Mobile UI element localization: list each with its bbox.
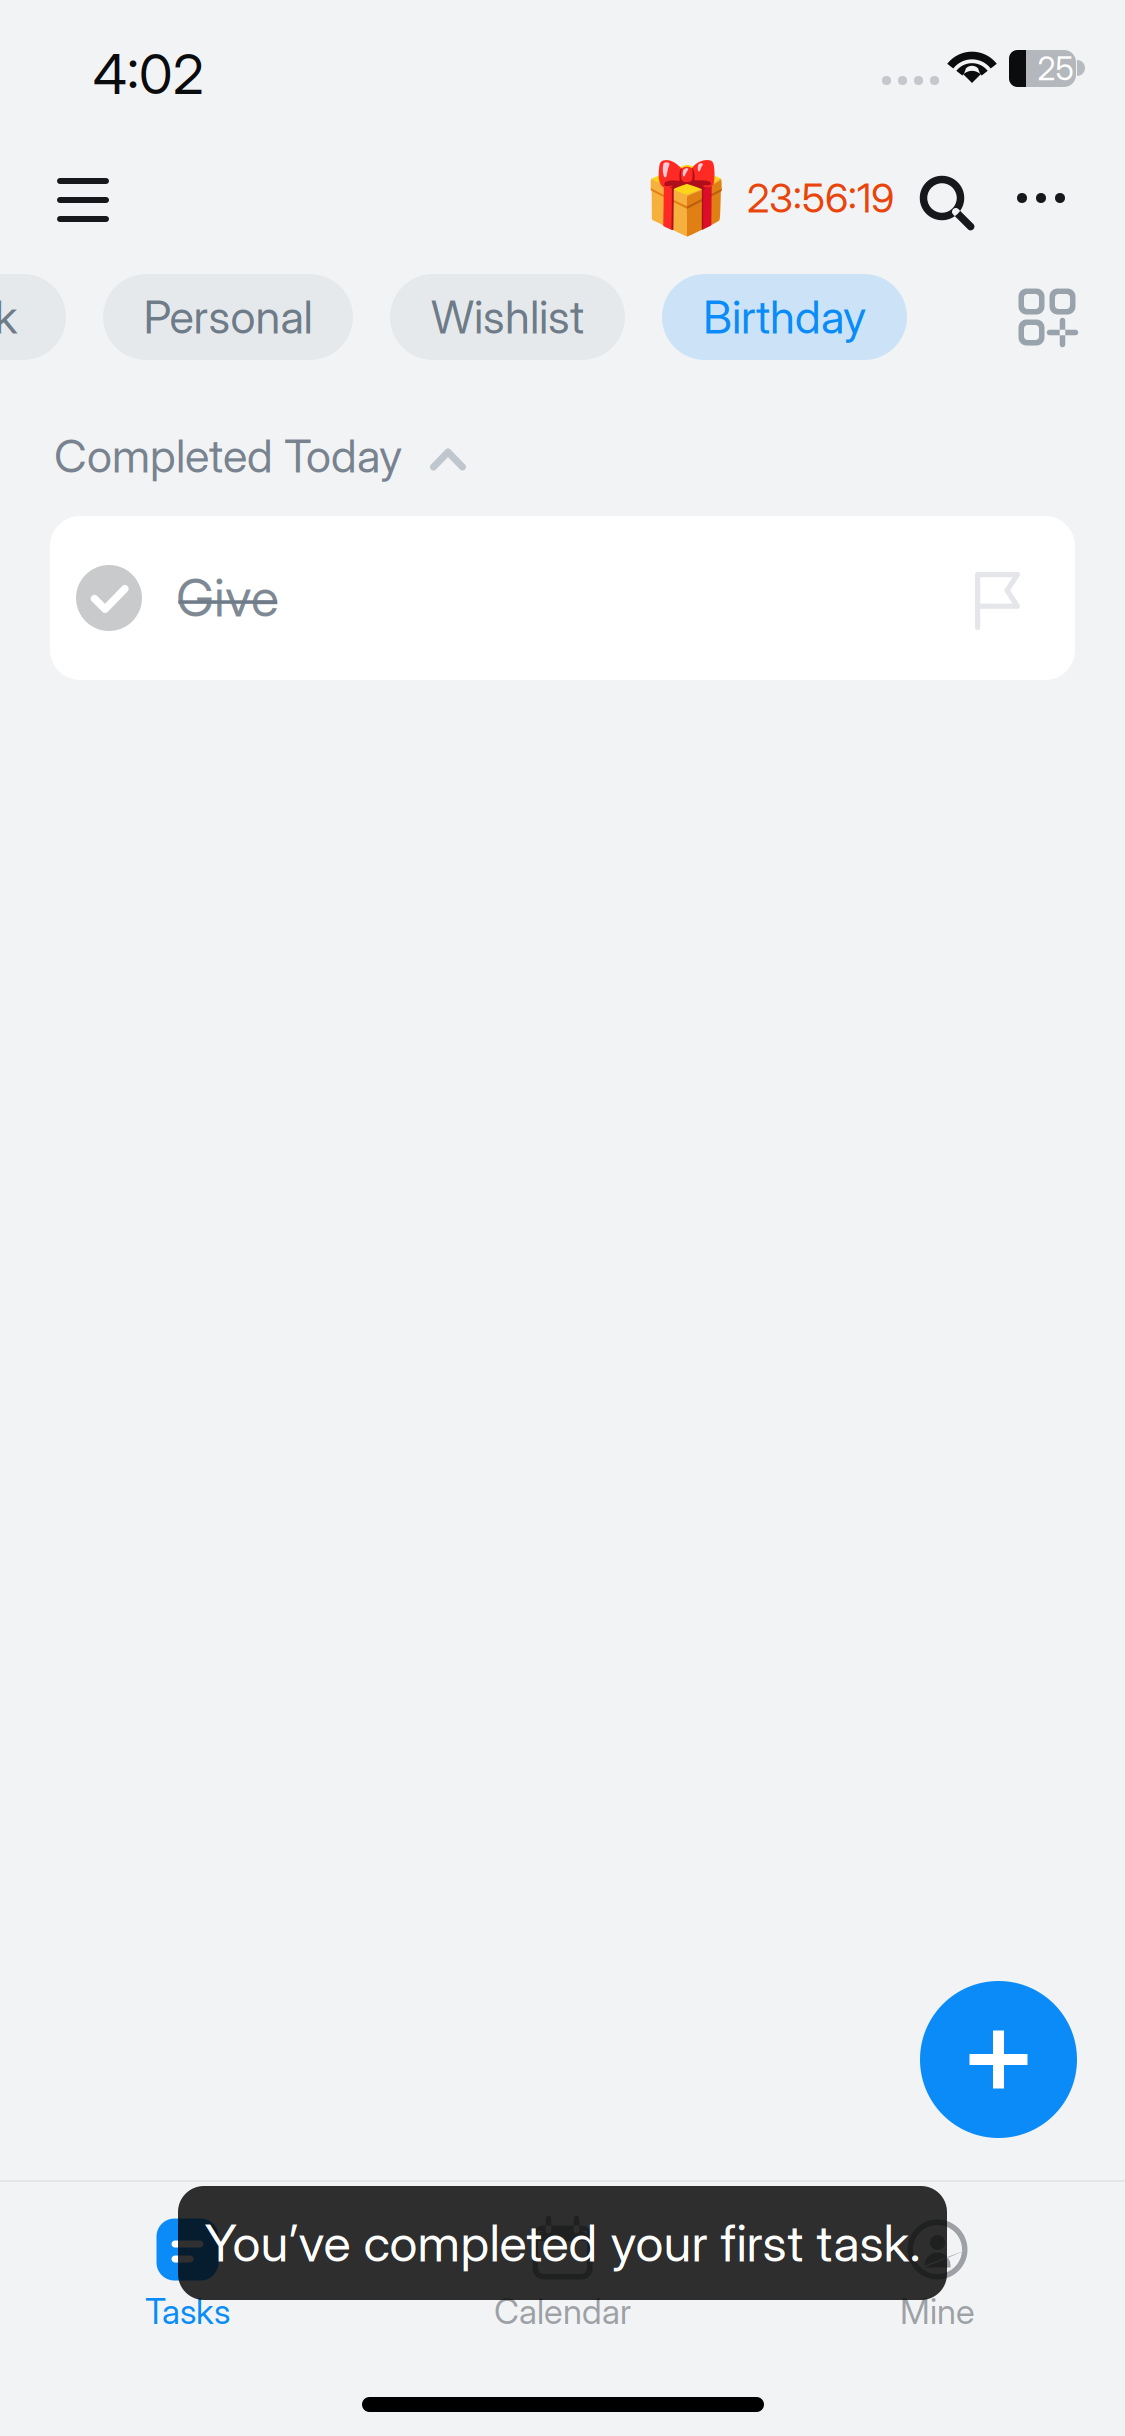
- button[interactable]: Birthday: [662, 274, 907, 360]
- button[interactable]: Mine: [750, 2200, 1125, 2350]
- staticText: Birthday: [703, 290, 866, 344]
- staticText: Completed Today: [54, 429, 402, 483]
- button[interactable]: Work: [0, 274, 66, 360]
- staticText: Mine: [900, 2290, 975, 2332]
- button[interactable]: Wishlist: [390, 274, 625, 360]
- staticText: Personal: [143, 290, 312, 344]
- button[interactable]: Search: [887, 143, 997, 253]
- button[interactable]: Manage lists: [1004, 274, 1090, 360]
- staticText: You’ve completed your first task.: [204, 2212, 920, 2274]
- staticText: 🎁: [643, 158, 729, 238]
- button[interactable]: Add task: [920, 1981, 1077, 2138]
- button[interactable]: Tasks: [0, 2200, 375, 2350]
- button[interactable]: Personal: [103, 274, 353, 360]
- button[interactable]: Menu: [28, 145, 138, 255]
- button[interactable]: Completed Today: [54, 421, 466, 491]
- button[interactable]: Calendar: [375, 2200, 750, 2350]
- button[interactable]: More options: [986, 143, 1096, 253]
- staticText: 25: [1037, 49, 1073, 88]
- button[interactable]: Give: [50, 516, 1075, 680]
- staticText: Tasks: [145, 2290, 230, 2332]
- button[interactable]: 🎁: [643, 143, 894, 253]
- staticText: Calendar: [494, 2290, 631, 2332]
- staticText: Work: [0, 290, 17, 344]
- staticText: 23:56:19: [747, 174, 894, 222]
- staticText: Give: [176, 566, 279, 629]
- staticText: 4:02: [93, 41, 204, 107]
- staticText: Wishlist: [431, 290, 584, 344]
